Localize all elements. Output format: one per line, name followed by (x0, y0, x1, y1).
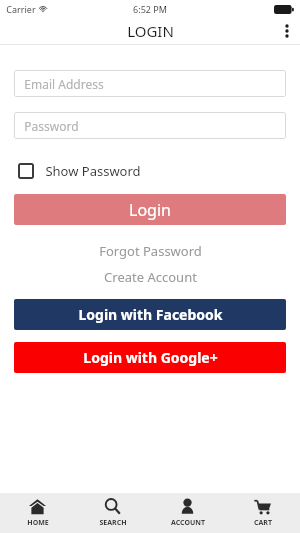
button[interactable]: Login (14, 194, 286, 225)
staticText: Email Address (24, 76, 104, 92)
button[interactable]: ACCOUNT (150, 493, 225, 533)
button[interactable]: Create Account (14, 268, 286, 285)
button[interactable]: Email Address (14, 70, 286, 97)
button[interactable]: HOME (0, 493, 75, 533)
staticText: Create Account (104, 268, 197, 285)
staticText: Login (129, 199, 171, 221)
button[interactable]: SEARCH (75, 493, 150, 533)
staticText: HOME (27, 518, 49, 528)
staticText: 6:52 PM (133, 3, 167, 15)
staticText: Login with Facebook (78, 305, 223, 324)
staticText: Show Password (45, 162, 141, 180)
button[interactable]: CART (225, 493, 300, 533)
staticText: CART (254, 518, 272, 528)
button[interactable]: Password (14, 112, 286, 139)
button[interactable]: Show Password (14, 161, 286, 181)
button[interactable]: Login with Google+ (14, 342, 286, 373)
button[interactable]: More options (274, 18, 300, 44)
staticText: LOGIN (127, 21, 174, 41)
staticText: Password (24, 118, 79, 134)
staticText: SEARCH (99, 518, 127, 528)
button[interactable]: Login with Facebook (14, 299, 286, 330)
button[interactable]: Forgot Password (14, 242, 286, 259)
staticText: Forgot Password (99, 242, 202, 259)
staticText: ACCOUNT (171, 518, 205, 528)
staticText: Login with Google+ (83, 348, 218, 367)
staticText: Carrier (6, 3, 36, 15)
